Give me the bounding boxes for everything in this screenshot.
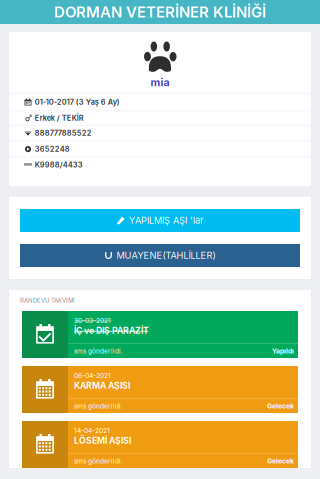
staticText: sms gönderildi.	[74, 347, 123, 355]
staticText: 01-10-2017 (3 Yaş 6 Ay)	[35, 97, 120, 106]
staticText: Yapıldı	[272, 347, 294, 355]
staticText: Erkek / TEKİR	[35, 113, 84, 122]
staticText: 14-04-2021	[74, 426, 110, 434]
staticText: RANDEVU TAKVİMİ	[20, 297, 75, 304]
staticText: YAPILMIŞ AŞI 'lar	[129, 215, 203, 226]
button[interactable]: 06-04-2021	[22, 366, 298, 413]
button[interactable]: MUAYENE(TAHLİLLER)	[20, 244, 300, 267]
staticText: LÖSEMİ AŞISI	[74, 435, 131, 446]
button[interactable]: YAPILMIŞ AŞI 'lar	[20, 209, 300, 232]
staticText: İÇ ve DIŞ PARAZİT	[74, 325, 149, 336]
staticText: 06-04-2021	[74, 371, 111, 379]
staticText: sms gönderildi.	[74, 402, 123, 410]
button[interactable]: 30-03-2021	[22, 311, 298, 358]
staticText: Gelecek	[267, 457, 294, 465]
staticText: 888777885522	[35, 129, 92, 138]
staticText: 30-03-2021	[74, 316, 111, 324]
staticText: MUAYENE(TAHLİLLER)	[116, 250, 215, 261]
staticText: sms gönderildi.	[74, 457, 123, 465]
button[interactable]: 14-04-2021	[22, 421, 298, 468]
staticText: K9988/4433	[35, 160, 83, 169]
staticText: mia	[150, 76, 169, 89]
staticText: KARMA AŞISI	[74, 380, 130, 391]
staticText: DORMAN VETERİNER KLİNİĞİ	[54, 3, 266, 21]
staticText: 3652248	[35, 144, 70, 153]
staticText: Gelecek	[267, 402, 294, 410]
